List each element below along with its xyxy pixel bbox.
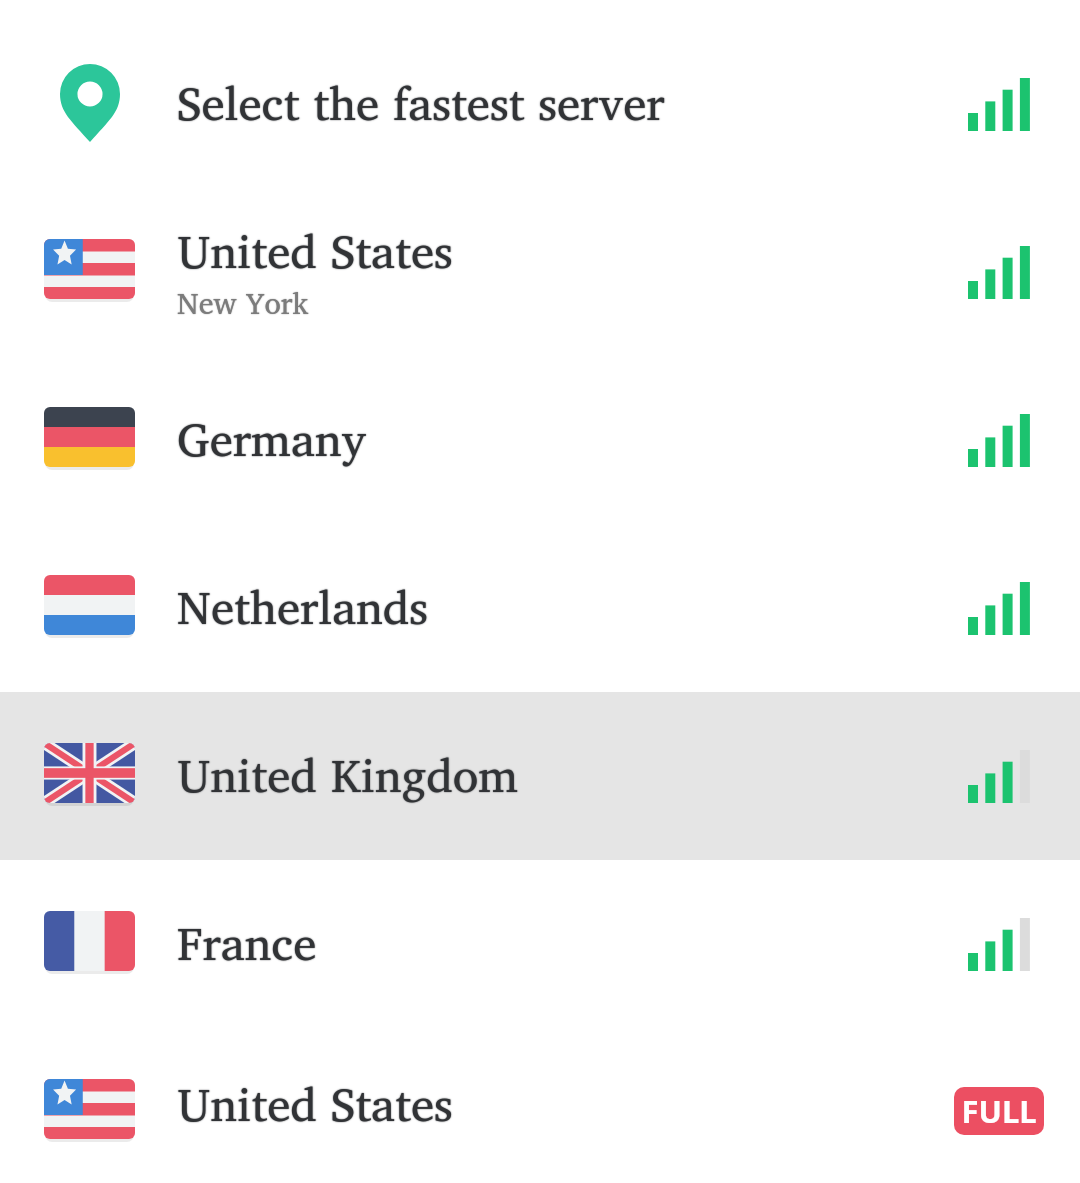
button[interactable]: FULL bbox=[954, 1087, 1044, 1135]
button[interactable]: United Kingdom bbox=[0, 692, 1080, 860]
staticText: Select the fastest server bbox=[177, 64, 665, 141]
staticText: United States bbox=[177, 1065, 453, 1142]
button[interactable]: Fastest server location bbox=[0, 20, 1080, 188]
staticText: France bbox=[177, 904, 317, 981]
staticText: FULL bbox=[961, 1090, 1037, 1132]
button[interactable]: United States bbox=[0, 1028, 1080, 1183]
button[interactable]: Germany bbox=[0, 356, 1080, 524]
staticText: United States bbox=[177, 212, 453, 289]
button[interactable]: France bbox=[0, 860, 1080, 1028]
staticText: Germany bbox=[177, 400, 367, 477]
staticText: Netherlands bbox=[177, 568, 429, 645]
button[interactable]: Netherlands bbox=[0, 524, 1080, 692]
staticText: New York bbox=[177, 278, 309, 327]
button[interactable]: United States bbox=[0, 188, 1080, 356]
staticText: United Kingdom bbox=[177, 736, 519, 813]
other: Fastest server location bbox=[60, 64, 120, 142]
